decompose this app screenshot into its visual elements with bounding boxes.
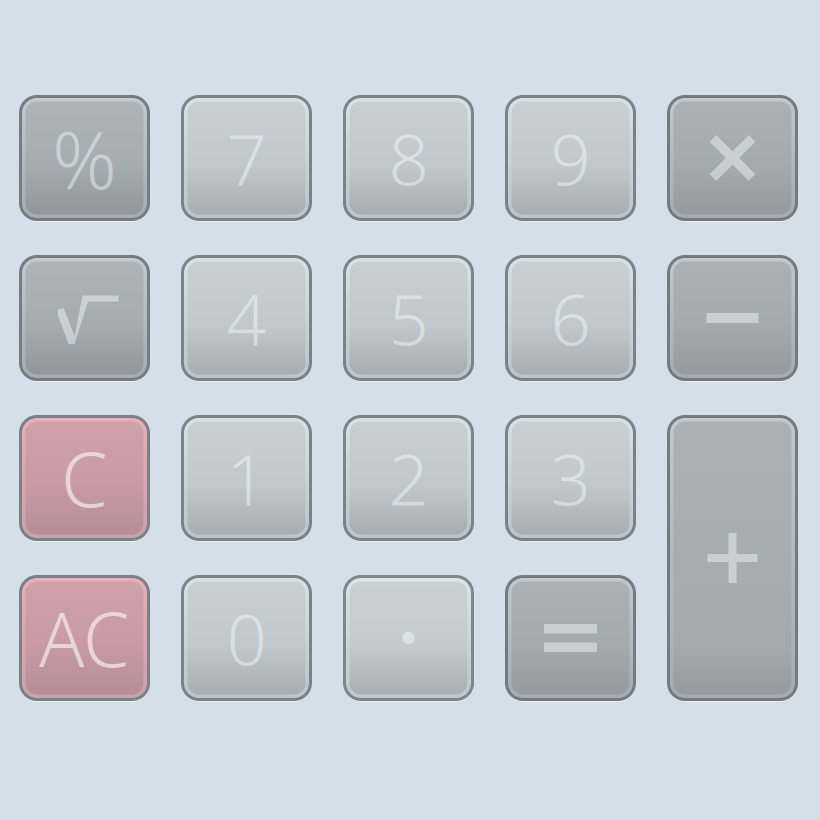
staticText: 3 (550, 431, 590, 525)
staticText: C (61, 428, 108, 528)
button[interactable]: 0 (181, 575, 312, 701)
button[interactable]: Plus (667, 415, 798, 701)
staticText: 9 (550, 111, 590, 205)
staticText: 4 (226, 271, 266, 365)
button[interactable]: 3 (505, 415, 636, 541)
staticText: 0 (226, 591, 266, 685)
button[interactable]: AC (19, 575, 150, 701)
button[interactable]: 1 (181, 415, 312, 541)
button[interactable]: Square root (19, 255, 150, 381)
button[interactable]: 7 (181, 95, 312, 221)
button[interactable]: Equals (505, 575, 636, 701)
button[interactable]: Minus (667, 255, 798, 381)
button[interactable]: 5 (343, 255, 474, 381)
staticText: 7 (226, 111, 266, 205)
button[interactable]: Multiply (667, 95, 798, 221)
staticText: % (52, 105, 117, 211)
button[interactable]: 2 (343, 415, 474, 541)
staticText: 5 (388, 271, 428, 365)
staticText: AC (39, 588, 130, 688)
staticText: 2 (388, 431, 428, 525)
button[interactable]: 6 (505, 255, 636, 381)
button[interactable]: 8 (343, 95, 474, 221)
button[interactable]: C (19, 415, 150, 541)
button[interactable]: Decimal point (343, 575, 474, 701)
staticText: 1 (226, 431, 266, 525)
staticText: 8 (388, 111, 428, 205)
button[interactable]: % (19, 95, 150, 221)
staticText: 6 (550, 271, 590, 365)
button[interactable]: 4 (181, 255, 312, 381)
button[interactable]: 9 (505, 95, 636, 221)
